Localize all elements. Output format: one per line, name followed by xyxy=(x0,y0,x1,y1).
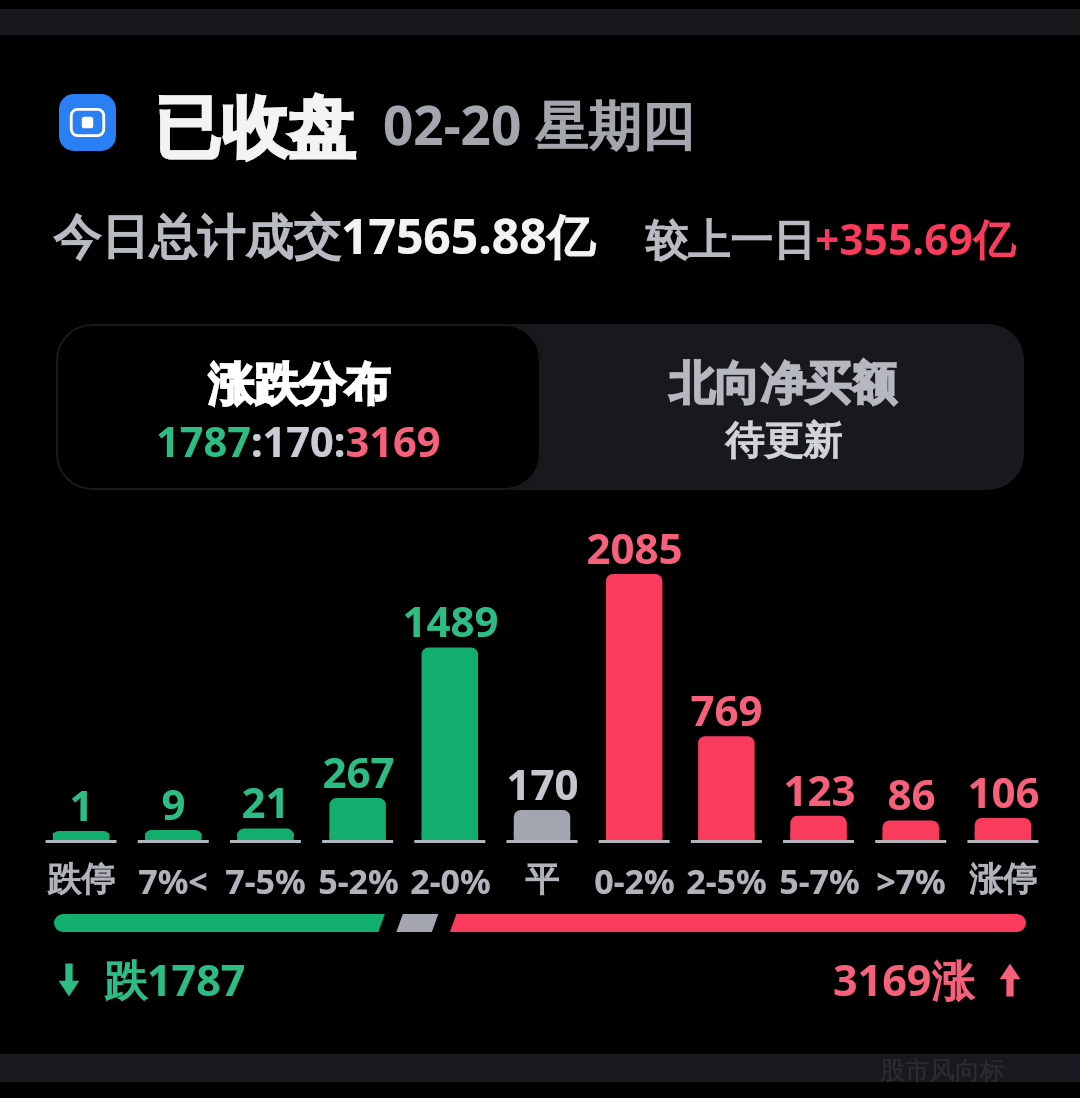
button[interactable]: 跌停 1 xyxy=(35,520,127,900)
button[interactable]: 涨跌分布 xyxy=(56,324,541,490)
button[interactable]: >7% 86 xyxy=(865,520,957,900)
staticText: 769 xyxy=(690,681,763,738)
staticText: 0-2% xyxy=(594,858,675,904)
button[interactable]: 7%< 9 xyxy=(127,520,219,900)
staticText: 1787:170:3169 xyxy=(156,413,441,470)
button[interactable]: Advancers 3169 xyxy=(833,950,1023,1009)
staticText: 已收盘 xyxy=(154,86,355,170)
staticText: 3169涨 xyxy=(833,950,975,1009)
staticText: 86 xyxy=(887,765,936,822)
staticText: 170 xyxy=(506,755,579,812)
staticText: 7-5% xyxy=(225,858,306,904)
staticText: 123 xyxy=(783,761,856,818)
button[interactable]: 2-5% 769 xyxy=(680,520,772,900)
staticText: 02-20 星期四 xyxy=(383,88,695,160)
staticText: 涨跌分布 xyxy=(208,356,390,413)
button[interactable]: 7-5% 21 xyxy=(219,520,311,900)
staticText: 待更新 xyxy=(725,416,842,465)
staticText: 2085 xyxy=(586,519,683,576)
button[interactable]: 5-2% 267 xyxy=(312,520,404,900)
staticText: 今日总计成交17565.88亿 xyxy=(53,203,595,269)
staticText: >7% xyxy=(876,858,946,904)
staticText: 7%< xyxy=(138,858,208,904)
staticText: 平 xyxy=(525,858,559,901)
button[interactable]: 0-2% 2085 xyxy=(588,520,680,900)
staticText: 股市风向标 xyxy=(880,1055,1005,1083)
staticText: 1 xyxy=(69,776,94,833)
staticText: 跌1787 xyxy=(104,950,246,1009)
staticText: 9 xyxy=(161,775,186,832)
button[interactable]: 涨停 106 xyxy=(957,520,1049,900)
staticText: 5-2% xyxy=(318,858,399,904)
button[interactable]: 2-0% 1489 xyxy=(404,520,496,900)
staticText: 2-5% xyxy=(686,858,767,904)
staticText: 267 xyxy=(322,743,395,800)
button[interactable]: 北向净买额 xyxy=(541,324,1024,490)
staticText: 2-0% xyxy=(410,858,491,904)
staticText: 21 xyxy=(241,773,290,830)
staticText: 涨停 xyxy=(969,858,1037,901)
button[interactable]: Decliners 1787 xyxy=(56,950,246,1009)
button[interactable]: 5-7% 123 xyxy=(772,520,864,900)
staticText: 5-7% xyxy=(779,858,860,904)
staticText: 跌停 xyxy=(47,858,115,901)
staticText: 北向净买额 xyxy=(669,355,897,412)
staticText: 1489 xyxy=(402,592,499,649)
staticText: 106 xyxy=(967,763,1040,820)
staticText: 较上一日+355.69亿 xyxy=(645,210,1016,268)
button[interactable]: 平 170 xyxy=(496,520,588,900)
button[interactable]: Market status xyxy=(59,94,116,151)
